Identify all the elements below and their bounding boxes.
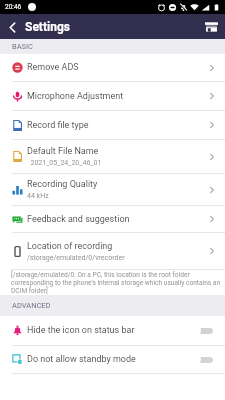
button[interactable]: Hide the icon on status bar [0, 316, 225, 346]
staticText: BASIC [12, 42, 33, 51]
staticText: 20:46 [5, 3, 22, 11]
staticText: Hide the icon on status bar [27, 325, 190, 336]
button[interactable]: Recording Quality [0, 174, 225, 206]
button[interactable]: Store [201, 17, 221, 37]
staticText: Feedback and suggestion [27, 214, 130, 225]
staticText: Default File Name [27, 146, 99, 157]
staticText: Microphone Adjustment [27, 91, 124, 102]
staticText: Record file type [27, 120, 89, 131]
button[interactable]: Record file type [0, 111, 225, 140]
staticText: Remove ADS [27, 62, 79, 73]
button[interactable]: Microphone Adjustment [0, 82, 225, 111]
staticText: /storage/emulated/0/vrecorder [27, 254, 125, 262]
button[interactable]: Default File Name [0, 140, 225, 174]
button[interactable]: Feedback and suggestion [0, 206, 225, 233]
button[interactable]: Location of recording [0, 233, 225, 270]
staticText: Location of recording [27, 241, 113, 252]
button[interactable]: Do not allow standby mode [0, 346, 225, 374]
staticText: ADVANCED [12, 301, 51, 310]
button[interactable]: Back [0, 15, 24, 39]
staticText: [/storage/emulated/0: On a PC, this loca… [11, 271, 222, 295]
staticText: 2021_05_24_20_46_01 [27, 159, 102, 167]
button[interactable]: Remove ADS [0, 54, 225, 82]
staticText: Recording Quality [27, 179, 98, 190]
staticText: 44 kHz [27, 192, 49, 200]
staticText: Settings [25, 20, 70, 34]
staticText: Do not allow standby mode [27, 354, 190, 365]
